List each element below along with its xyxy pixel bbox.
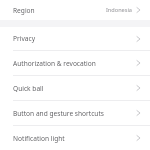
- staticText: Button and gesture shortcuts: [13, 109, 104, 118]
- staticText: Privacy: [13, 34, 35, 43]
- button[interactable]: Quick ball: [0, 76, 150, 100]
- staticText: Indonesia: [105, 6, 132, 14]
- staticText: Region: [13, 6, 35, 15]
- button[interactable]: Authorization & revocation: [0, 51, 150, 75]
- staticText: Quick ball: [13, 84, 44, 93]
- button[interactable]: Privacy: [0, 27, 150, 50]
- button[interactable]: Notification light: [0, 126, 150, 150]
- button[interactable]: Button and gesture shortcuts: [0, 101, 150, 125]
- staticText: Notification light: [13, 134, 65, 143]
- button[interactable]: Region: [0, 0, 150, 20]
- staticText: Authorization & revocation: [13, 59, 96, 68]
